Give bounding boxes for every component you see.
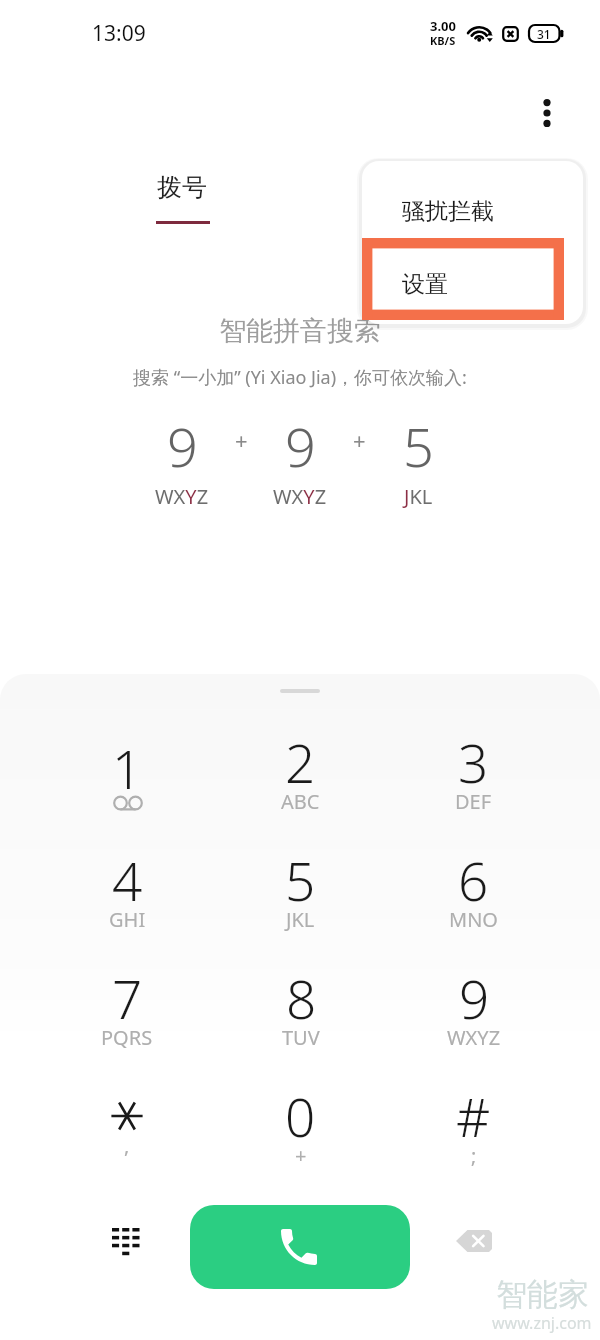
staticText: PQRS xyxy=(101,1024,153,1051)
staticText: 9 xyxy=(459,962,490,1034)
staticText: + xyxy=(353,425,366,455)
button[interactable]: Keypad xyxy=(90,1211,162,1283)
staticText: 8 xyxy=(286,962,317,1034)
button[interactable]: 7 xyxy=(40,953,214,1071)
button[interactable]: Call xyxy=(190,1205,410,1289)
button[interactable]: 1 xyxy=(40,717,214,835)
staticText: ; xyxy=(471,1142,477,1169)
staticText: 3 xyxy=(458,726,489,798)
staticText: GHI xyxy=(109,906,146,933)
button[interactable]: , xyxy=(40,1071,214,1189)
staticText: # xyxy=(456,1080,491,1152)
staticText: JKL xyxy=(286,906,315,933)
button[interactable]: 3 xyxy=(387,717,560,835)
staticText: 9 xyxy=(285,409,316,483)
staticText: 拨号 xyxy=(157,172,207,203)
staticText: MNO xyxy=(449,906,498,933)
button[interactable]: 6 xyxy=(387,835,560,953)
staticText: 6 xyxy=(458,844,489,916)
staticText: TUV xyxy=(282,1024,320,1051)
button[interactable]: 拨号 xyxy=(155,172,209,224)
staticText: 5 xyxy=(403,409,434,483)
staticText: 0 xyxy=(285,1080,316,1152)
staticText: 3.00 xyxy=(430,17,456,35)
staticText: DEF xyxy=(455,788,492,815)
staticText: 31 xyxy=(537,26,551,42)
staticText: 骚扰拦截 xyxy=(402,197,494,226)
staticText: ABC xyxy=(281,788,320,815)
staticText: + xyxy=(235,425,248,455)
staticText: www.znj.com xyxy=(492,1312,592,1334)
button[interactable]: Delete xyxy=(438,1205,510,1277)
staticText: WXYZ xyxy=(155,483,209,510)
staticText: 7 xyxy=(112,962,143,1034)
staticText: , xyxy=(124,1132,130,1159)
button[interactable]: 设置 xyxy=(362,241,583,324)
button[interactable]: # xyxy=(387,1071,560,1189)
button[interactable]: 8 xyxy=(214,953,387,1071)
staticText: 2 xyxy=(285,726,316,798)
staticText: WXYZ xyxy=(447,1024,501,1051)
button[interactable]: 骚扰拦截 xyxy=(362,161,583,241)
button[interactable]: More options xyxy=(516,78,576,138)
staticText: 搜索 “一小加” (Yi Xiao Jia)，你可依次输入: xyxy=(133,365,467,390)
staticText: 1 xyxy=(112,732,143,804)
staticText: 智能家 xyxy=(496,1275,589,1314)
staticText: 智能拼音搜索 xyxy=(219,314,381,348)
button[interactable]: 4 xyxy=(40,835,214,953)
staticText: + xyxy=(295,1142,307,1169)
button[interactable]: 9 xyxy=(387,953,560,1071)
button[interactable]: 5 xyxy=(214,835,387,953)
staticText: 5 xyxy=(285,844,316,916)
staticText: KB/S xyxy=(430,33,456,48)
staticText: WXYZ xyxy=(273,483,327,510)
staticText: 设置 xyxy=(402,270,448,299)
staticText: 13:09 xyxy=(92,19,146,48)
staticText: JKL xyxy=(404,483,433,510)
staticText: 9 xyxy=(167,409,198,483)
staticText: 4 xyxy=(112,844,143,916)
button[interactable]: 0 xyxy=(214,1071,387,1189)
button[interactable]: 2 xyxy=(214,717,387,835)
